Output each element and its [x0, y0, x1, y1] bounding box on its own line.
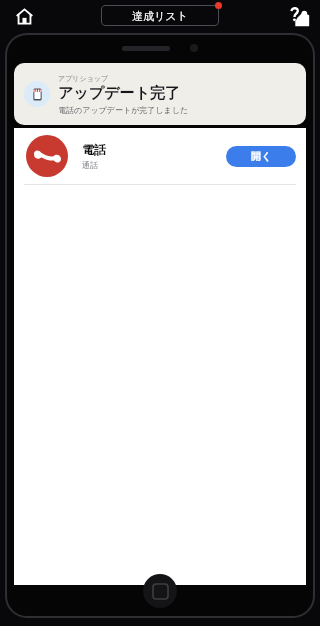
staticText: 開く [251, 150, 272, 163]
button[interactable]: 達成リスト [101, 5, 219, 26]
button[interactable]: 開く [226, 146, 296, 167]
staticText: 達成リスト [132, 9, 188, 23]
staticText: 電話のアップデートが完了しました [58, 105, 189, 115]
button[interactable]: アプリショップ [14, 63, 306, 125]
staticText: 通話 [82, 160, 98, 170]
button[interactable]: Home [12, 4, 36, 28]
button[interactable]: Home button [143, 574, 177, 608]
staticText: アップデート完了 [58, 84, 180, 103]
button[interactable]: 電話 [14, 128, 306, 184]
staticText: 電話 [82, 142, 106, 157]
button[interactable]: Help [286, 3, 312, 29]
staticText: アプリショップ [58, 74, 109, 83]
